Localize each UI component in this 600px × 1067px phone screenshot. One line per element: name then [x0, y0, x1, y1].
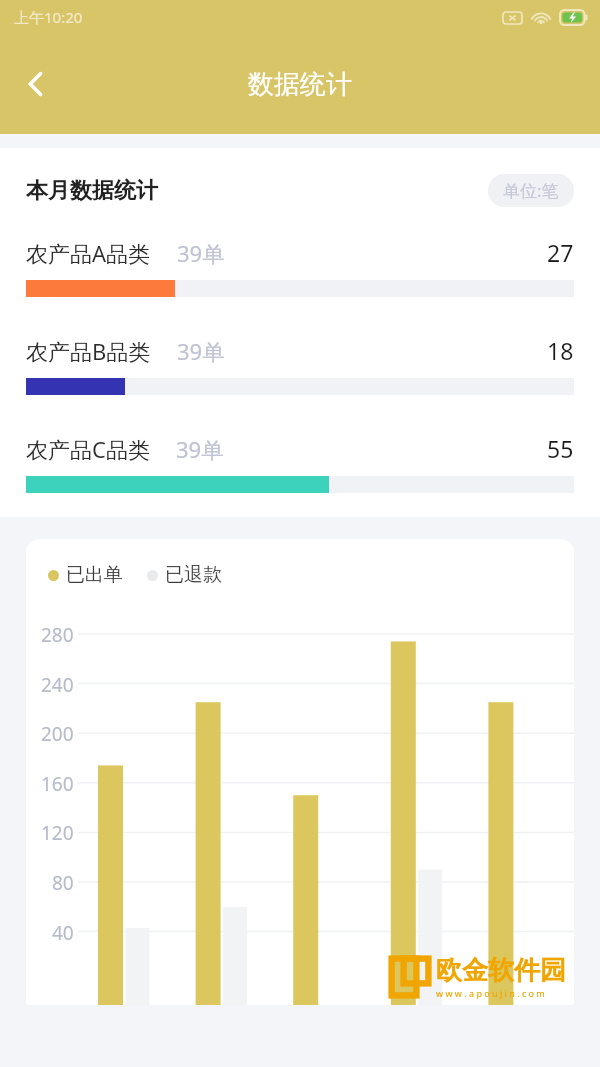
staticText: 18 [547, 335, 574, 366]
staticText: 39单 [177, 336, 225, 366]
staticText: 农产品C品类 [26, 434, 150, 464]
staticText: 280 [41, 622, 74, 648]
staticText: 欧金软件园 [436, 954, 566, 987]
staticText: 农产品A品类 [26, 238, 151, 268]
staticText: 55 [547, 433, 574, 464]
staticText: 80 [52, 870, 74, 896]
staticText: 单位:笔 [503, 179, 559, 202]
staticText: 本月数据统计 [26, 177, 158, 205]
staticText: 120 [41, 820, 74, 846]
staticText: 200 [41, 721, 74, 747]
staticText: 160 [41, 771, 74, 797]
staticText: 27 [547, 237, 574, 268]
button[interactable]: 农产品C品类 [26, 433, 574, 493]
staticText: 农产品B品类 [26, 336, 151, 366]
button[interactable]: 农产品A品类 [26, 237, 574, 297]
staticText: 40 [52, 920, 74, 946]
button[interactable]: 已出单 [48, 563, 123, 587]
staticText: w w w . a p o u j i n . c o m [436, 987, 545, 999]
button[interactable]: 农产品B品类 [26, 335, 574, 395]
staticText: 39单 [176, 434, 224, 464]
staticText: 39单 [177, 238, 225, 268]
button[interactable]: 单位:笔 [488, 174, 574, 207]
staticText: 240 [41, 672, 74, 698]
button[interactable]: Back [6, 54, 66, 114]
button[interactable]: 已退款 [147, 563, 222, 587]
staticText: 已退款 [165, 563, 222, 587]
staticText: 已出单 [66, 563, 123, 587]
staticText: 上午10:20 [14, 7, 83, 27]
staticText: 数据统计 [248, 68, 352, 101]
